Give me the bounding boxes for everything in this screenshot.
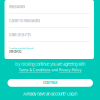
staticText: Confirm Password: [8, 18, 39, 23]
staticText: 3MQVO3: [8, 50, 21, 54]
button[interactable]: Already have an account? Log In: [0, 91, 100, 96]
staticText: CONTINUE: [43, 81, 58, 85]
button[interactable]: Date of Birth: [4, 28, 94, 42]
button[interactable]: Promo/Invitation Code (Optional): [4, 42, 94, 59]
staticText: Date of Birth: [8, 32, 30, 37]
staticText: Terms & Conditions and Privacy Policy: [18, 68, 81, 72]
button[interactable]: Confirm Password: [4, 14, 94, 28]
staticText: Already have an account? Log In: [23, 91, 77, 96]
staticText: Password: [8, 4, 24, 9]
button[interactable]: CONTINUE: [7, 79, 93, 87]
button[interactable]: Password: [4, 0, 94, 14]
staticText: By clicking continue you are agreeing wi…: [15, 62, 85, 67]
button[interactable]: Terms & Conditions and Privacy Policy: [18, 68, 81, 72]
staticText: Promo/Invitation Code (Optional): [8, 47, 33, 49]
